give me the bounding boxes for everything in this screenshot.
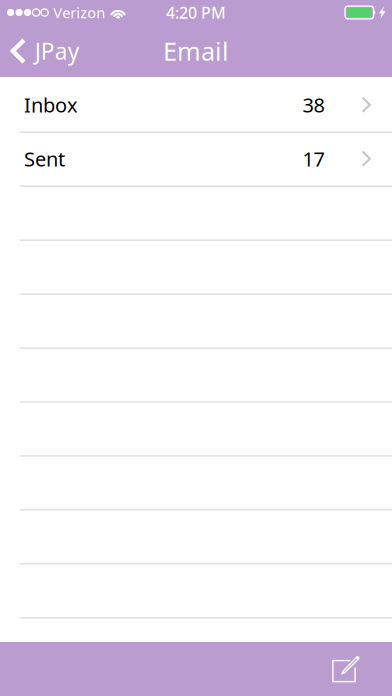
staticText: Sent: [24, 145, 65, 172]
button[interactable]: Sent: [0, 133, 392, 187]
staticText: 17: [302, 145, 324, 172]
button[interactable]: Compose: [316, 642, 364, 696]
staticText: Inbox: [24, 91, 78, 118]
button[interactable]: JPay: [0, 25, 92, 77]
staticText: 38: [302, 91, 324, 118]
staticText: JPay: [35, 36, 80, 66]
staticText: Verizon: [53, 3, 105, 22]
button[interactable]: Inbox: [0, 79, 392, 133]
staticText: Email: [163, 34, 229, 68]
staticText: 4:20 PM: [166, 2, 226, 23]
